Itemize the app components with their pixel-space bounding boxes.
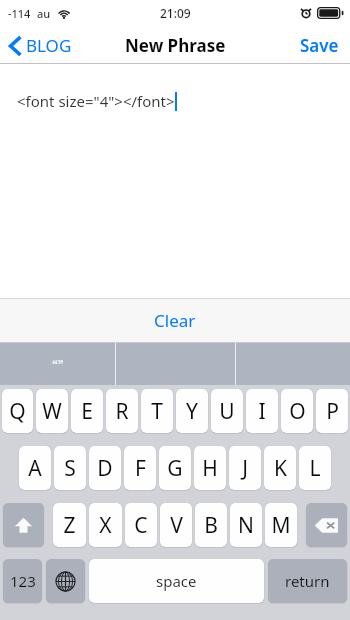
staticText: return xyxy=(285,571,330,591)
button[interactable]: E xyxy=(71,389,103,433)
staticText: L xyxy=(309,454,321,483)
button[interactable]: Shift xyxy=(3,503,44,547)
staticText: space xyxy=(156,571,197,591)
button[interactable]: G xyxy=(159,446,191,490)
staticText: K xyxy=(274,454,287,483)
button[interactable]: N xyxy=(230,503,262,547)
staticText: N xyxy=(238,511,254,540)
staticText: H xyxy=(202,454,218,483)
button[interactable]: Z xyxy=(53,503,86,547)
staticText: Clear xyxy=(154,309,196,332)
staticText: U xyxy=(219,397,235,426)
button[interactable]: J xyxy=(229,446,261,490)
staticText: Y xyxy=(186,397,198,426)
button[interactable]: L xyxy=(299,446,331,490)
staticText: -114 xyxy=(8,6,31,21)
button[interactable]: Backspace xyxy=(306,503,347,547)
staticText: B xyxy=(204,511,218,540)
button[interactable]: Q xyxy=(2,389,33,433)
button[interactable]: O xyxy=(281,389,313,433)
staticText: <font size="4"></font> xyxy=(17,91,175,111)
staticText: Z xyxy=(63,511,76,540)
button[interactable]: space xyxy=(89,559,264,603)
button[interactable]: V xyxy=(160,503,192,547)
staticText: E xyxy=(81,397,93,426)
button[interactable]: Switch keyboard xyxy=(46,559,85,603)
button[interactable]: U xyxy=(211,389,243,433)
staticText: “” xyxy=(52,356,64,372)
staticText: R xyxy=(115,397,129,426)
button[interactable]: H xyxy=(194,446,226,490)
button[interactable]: return xyxy=(268,559,347,603)
button[interactable]: D xyxy=(89,446,121,490)
staticText: A xyxy=(28,454,42,483)
staticText: S xyxy=(64,454,76,483)
button[interactable]: R xyxy=(106,389,138,433)
staticText: Q xyxy=(9,397,26,426)
staticText: J xyxy=(242,454,248,483)
button[interactable]: W xyxy=(36,389,68,433)
button[interactable]: M xyxy=(265,503,297,547)
button[interactable]: Suggestion xyxy=(236,342,350,385)
staticText: O xyxy=(289,397,306,426)
staticText: M xyxy=(271,511,291,540)
button[interactable]: K xyxy=(264,446,296,490)
staticText: 123 xyxy=(10,571,36,591)
staticText: D xyxy=(97,454,113,483)
button[interactable]: Clear xyxy=(0,298,350,342)
button[interactable]: T xyxy=(141,389,173,433)
staticText: I xyxy=(258,397,266,426)
button[interactable]: Suggestion xyxy=(116,342,235,385)
staticText: V xyxy=(170,511,183,540)
staticText: W xyxy=(42,397,62,426)
button[interactable]: I xyxy=(246,389,278,433)
button[interactable]: “” xyxy=(0,342,115,385)
button[interactable]: C xyxy=(125,503,157,547)
staticText: au xyxy=(37,6,51,21)
staticText: G xyxy=(167,454,183,483)
staticText: P xyxy=(326,397,339,426)
staticText: C xyxy=(134,511,148,540)
staticText: Save xyxy=(300,34,339,57)
button[interactable]: F xyxy=(124,446,156,490)
staticText: 21:09 xyxy=(160,5,191,21)
button[interactable]: P xyxy=(316,389,348,433)
button[interactable]: A xyxy=(19,446,51,490)
staticText: F xyxy=(135,454,146,483)
staticText: New Phrase xyxy=(125,34,226,57)
button[interactable]: 123 xyxy=(3,559,42,603)
button[interactable]: Y xyxy=(176,389,208,433)
staticText: T xyxy=(151,397,163,426)
staticText: X xyxy=(99,511,112,540)
staticText: BLOG xyxy=(26,34,72,57)
button[interactable]: BLOG xyxy=(0,29,84,62)
button[interactable]: Save xyxy=(289,29,350,62)
button[interactable]: S xyxy=(54,446,86,490)
button[interactable]: B xyxy=(195,503,227,547)
button[interactable]: X xyxy=(89,503,122,547)
